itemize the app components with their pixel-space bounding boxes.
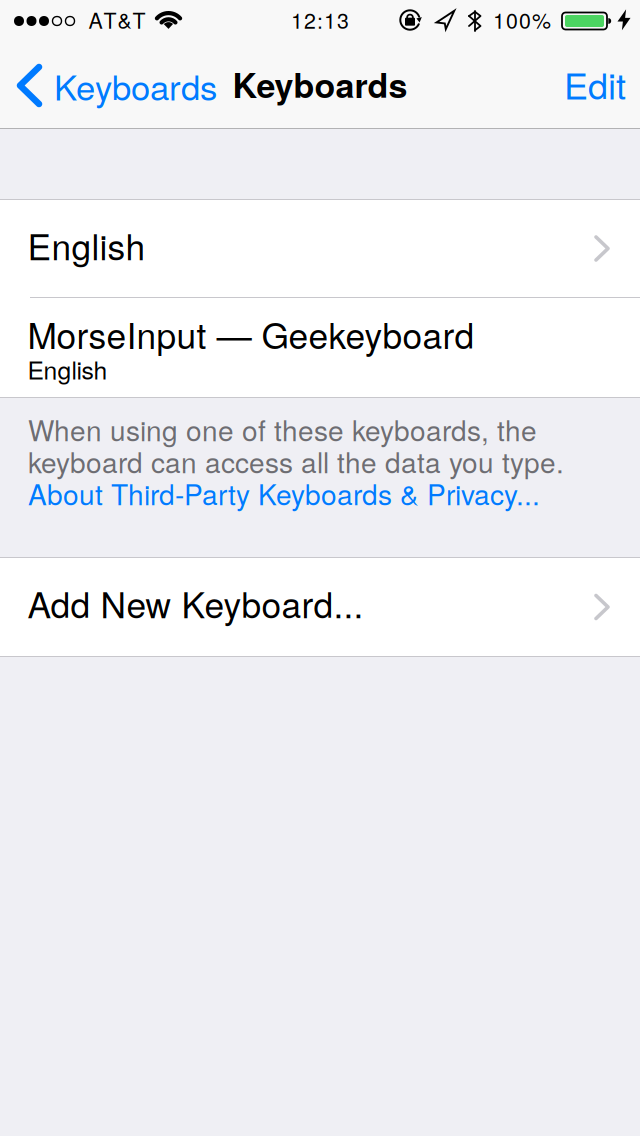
button[interactable]: Edit (564, 58, 626, 110)
staticText: Keyboards (54, 61, 217, 110)
staticText: A T & T (88, 4, 145, 35)
staticText: keyboard can access all the data you typ… (28, 441, 564, 481)
staticText: English (27, 220, 145, 270)
button[interactable]: Add New Keyboard... (0, 558, 640, 656)
staticText: MorseInput — Geekeyboard (27, 308, 474, 359)
staticText: When using one of these keyboards, the (28, 409, 537, 449)
button[interactable]: English (0, 200, 640, 297)
staticText: Edit (564, 58, 626, 110)
button[interactable]: MorseInput — Geekeyboard (0, 298, 640, 397)
button[interactable]: Keyboards (17, 61, 217, 110)
button[interactable]: About Third-Party Keyboards & Privacy... (28, 473, 540, 513)
staticText: About Third-Party Keyboards & Privacy... (28, 473, 540, 513)
staticText: Keyboards (232, 60, 407, 108)
staticText: English (27, 351, 107, 386)
staticText: 1 2 : 1 3 (291, 4, 349, 35)
staticText: 1 0 0 % (493, 4, 551, 35)
staticText: Add New Keyboard... (27, 578, 363, 628)
